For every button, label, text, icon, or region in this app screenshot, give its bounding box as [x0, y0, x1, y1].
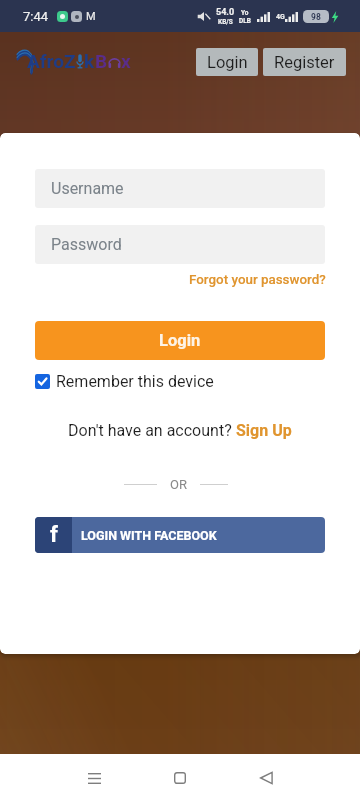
- staticText: B: [95, 50, 108, 72]
- staticText: OR: [170, 477, 187, 492]
- button[interactable]: Forgot your password?: [189, 272, 326, 288]
- staticText: Password: [51, 235, 122, 254]
- staticText: Login: [207, 53, 248, 72]
- staticText: Z: [64, 50, 76, 72]
- staticText: Login: [159, 331, 201, 350]
- staticText: DLB: [239, 17, 251, 25]
- button[interactable]: Register: [263, 48, 346, 76]
- staticText: Sign Up: [236, 421, 292, 440]
- staticText: Username: [51, 179, 124, 198]
- staticText: Forgot your password?: [189, 272, 326, 288]
- staticText: 7:44: [23, 9, 49, 24]
- staticText: Afro: [27, 50, 64, 72]
- staticText: M: [86, 10, 96, 23]
- button[interactable]: Back: [246, 758, 286, 798]
- staticText: f: [50, 522, 58, 548]
- button[interactable]: Password: [35, 225, 325, 264]
- staticText: 4G: [276, 13, 285, 21]
- staticText: Don't have an account?: [68, 421, 236, 440]
- staticText: 98: [311, 12, 321, 22]
- staticText: Remember this device: [56, 372, 214, 391]
- staticText: LOGIN WITH FACEBOOK: [81, 528, 217, 543]
- button[interactable]: Sign Up: [236, 421, 292, 440]
- button[interactable]: Remember this device: [35, 372, 214, 391]
- button[interactable]: f: [35, 517, 325, 553]
- staticText: KB/S: [218, 18, 233, 26]
- staticText: Register: [274, 53, 335, 72]
- button[interactable]: Username: [35, 169, 325, 208]
- staticText: Yo: [241, 9, 249, 17]
- button[interactable]: Login: [196, 48, 258, 76]
- button[interactable]: Recent apps: [74, 758, 114, 798]
- staticText: x: [121, 50, 131, 72]
- staticText: k: [84, 50, 95, 72]
- staticText: 54.0: [216, 7, 235, 18]
- button[interactable]: Login: [35, 321, 325, 360]
- button[interactable]: Home: [160, 758, 200, 798]
